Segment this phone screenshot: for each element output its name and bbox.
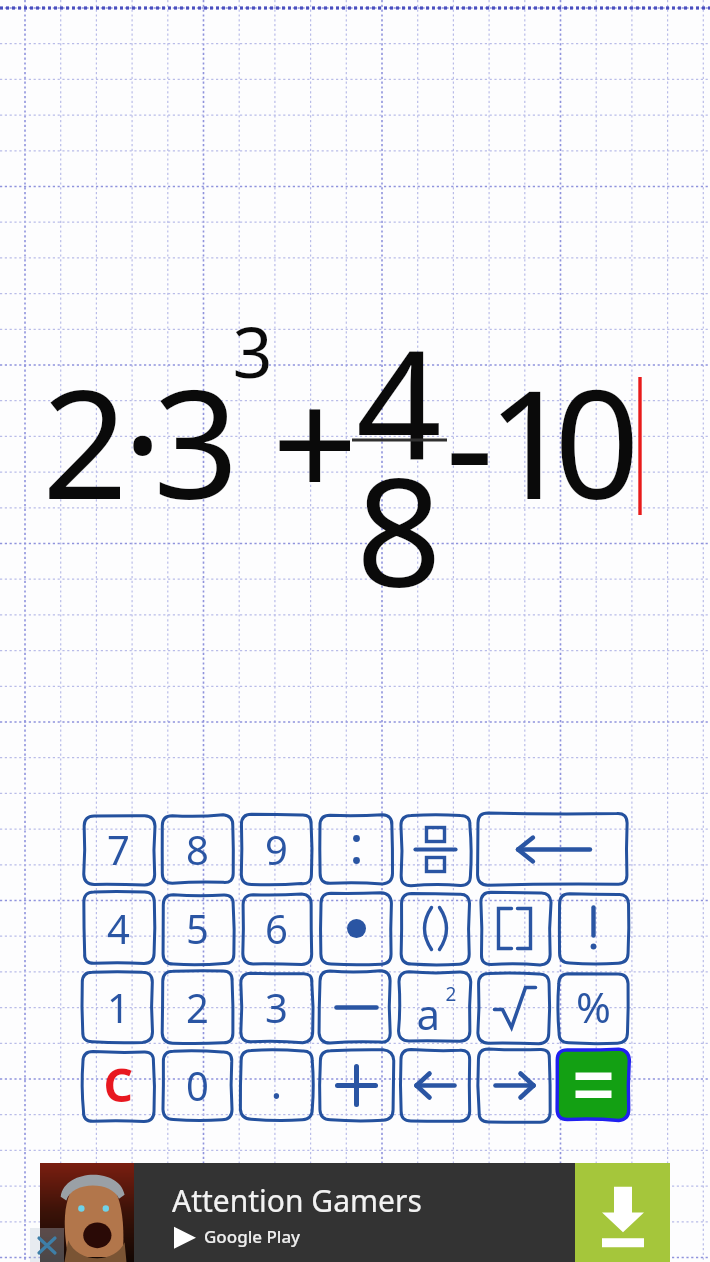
button[interactable]: Minus: [320, 971, 393, 1044]
button[interactable]: Percent: [557, 971, 630, 1044]
button[interactable]: 0: [161, 1049, 234, 1122]
button[interactable]: Parentheses: [399, 892, 472, 965]
button[interactable]: 2: [161, 971, 234, 1044]
button[interactable]: 1: [82, 971, 155, 1044]
button[interactable]: 5: [161, 892, 234, 965]
button[interactable]: Move right: [478, 1049, 551, 1122]
button[interactable]: Multiply: [320, 892, 393, 965]
button[interactable]: Advertisement: Attention Gamers: [40, 1163, 670, 1262]
button[interactable]: Square root: [478, 971, 551, 1044]
button[interactable]: 3: [240, 971, 313, 1044]
button[interactable]: Factorial: [557, 892, 630, 965]
button[interactable]: divide colon: [320, 813, 393, 886]
button[interactable]: Power: [399, 971, 472, 1044]
button[interactable]: Fraction: [399, 813, 472, 886]
button[interactable]: Decimal point: [240, 1049, 313, 1122]
button[interactable]: Brackets: [478, 892, 551, 965]
button[interactable]: 7: [82, 813, 155, 886]
button[interactable]: Equals: [557, 1049, 630, 1122]
button[interactable]: 4: [82, 892, 155, 965]
button[interactable]: 6: [240, 892, 313, 965]
button[interactable]: Clear: [82, 1049, 155, 1122]
button[interactable]: Move left: [399, 1049, 472, 1122]
button[interactable]: Close ad: [30, 1228, 64, 1262]
button[interactable]: Backspace: [478, 813, 630, 886]
button[interactable]: Plus: [320, 1049, 393, 1122]
button[interactable]: 9: [240, 813, 313, 886]
button[interactable]: 8: [161, 813, 234, 886]
